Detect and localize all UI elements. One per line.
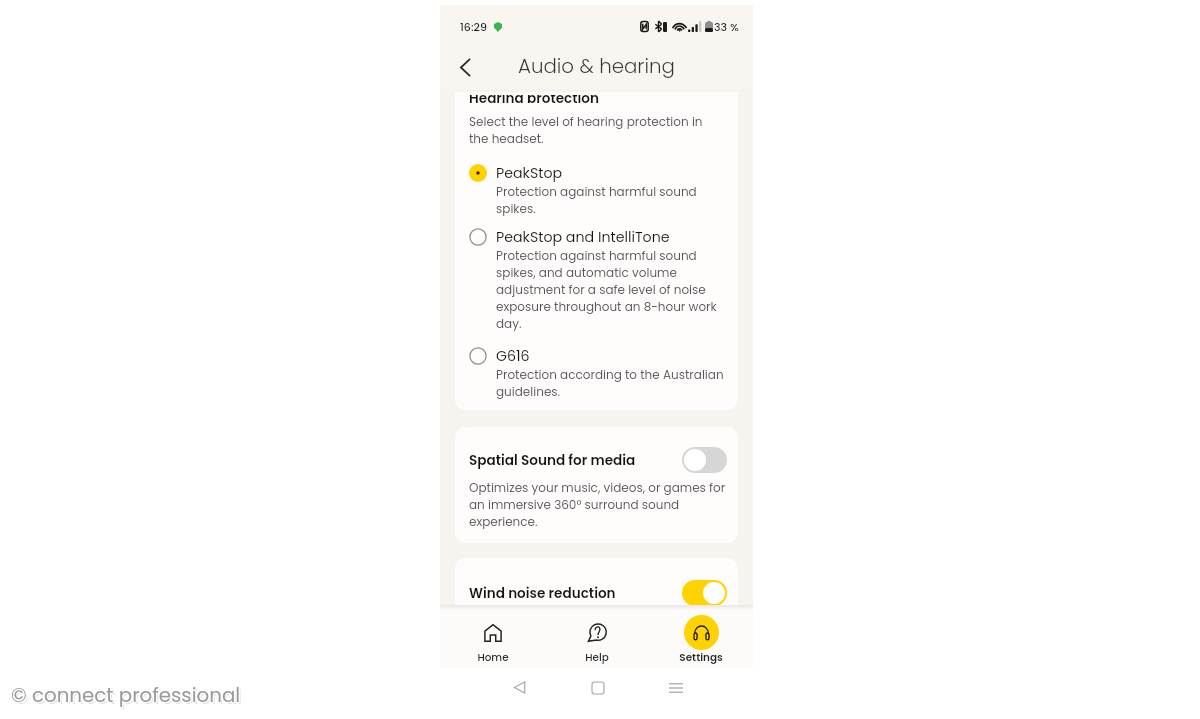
staticText: Spatial Sound for media xyxy=(469,451,682,470)
staticText: Settings xyxy=(679,650,723,665)
button[interactable]: Switch on xyxy=(682,580,727,605)
staticText: Select the level of hearing protection i… xyxy=(469,113,714,147)
button[interactable]: PeakStop and IntelliTone xyxy=(469,227,727,332)
staticText: 16:29 xyxy=(460,19,487,34)
staticText: 33 % xyxy=(714,19,739,34)
staticText: © connect professional xyxy=(12,681,242,709)
staticText: Protection against harmful sound spikes. xyxy=(496,183,727,217)
staticText: Help xyxy=(585,650,609,665)
staticText: Protection according to the Australian g… xyxy=(496,366,727,400)
staticText: © connect professional xyxy=(12,680,242,708)
staticText: PeakStop and IntelliTone xyxy=(496,227,670,247)
staticText: © connect professional xyxy=(11,681,241,709)
staticText: © connect professional xyxy=(12,682,242,710)
button[interactable]: Back xyxy=(451,53,479,81)
staticText: © connect professional xyxy=(11,680,241,708)
button[interactable]: Settings xyxy=(649,605,753,668)
staticText: PeakStop xyxy=(496,163,563,183)
button[interactable]: Switch off xyxy=(682,447,727,473)
staticText: © connect professional xyxy=(11,682,241,710)
staticText: Optimizes your music, videos, or games f… xyxy=(469,479,727,530)
staticText: Home xyxy=(477,650,509,665)
staticText: Wind noise reduction xyxy=(469,584,682,603)
button[interactable]: PeakStop xyxy=(469,163,727,217)
staticText: Hearing protection xyxy=(469,95,599,103)
staticText: © connect professional xyxy=(10,680,240,708)
button[interactable]: G616 xyxy=(469,346,727,400)
button[interactable]: Home xyxy=(440,605,545,668)
staticText: © connect professional xyxy=(10,682,240,710)
staticText: G616 xyxy=(496,346,530,366)
staticText: © connect professional xyxy=(13,683,243,711)
button[interactable]: Help xyxy=(545,605,649,668)
staticText: Protection against harmful sound spikes,… xyxy=(496,247,727,332)
staticText: Audio & hearing xyxy=(518,52,675,80)
staticText: © connect professional xyxy=(10,681,240,709)
staticText: © connect professional xyxy=(12,682,242,710)
